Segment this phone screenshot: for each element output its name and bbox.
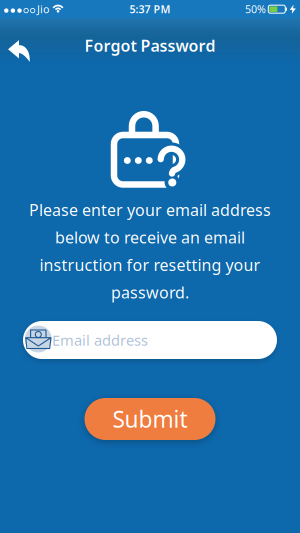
- button[interactable]: Email address: [23, 321, 277, 359]
- staticText: Submit: [112, 404, 187, 434]
- staticText: instruction for resetting your: [39, 254, 260, 275]
- staticText: password.: [111, 282, 189, 303]
- staticText: Jio: [37, 2, 49, 16]
- button[interactable]: [2, 34, 36, 68]
- staticText: 5:37 PM: [129, 2, 170, 16]
- staticText: Email address: [52, 330, 148, 350]
- staticText: Please enter your email address: [29, 199, 271, 220]
- staticText: below to receive an email: [55, 227, 245, 248]
- button[interactable]: Submit: [84, 398, 215, 440]
- staticText: 50%: [245, 2, 266, 16]
- staticText: Forgot Password: [84, 35, 215, 56]
